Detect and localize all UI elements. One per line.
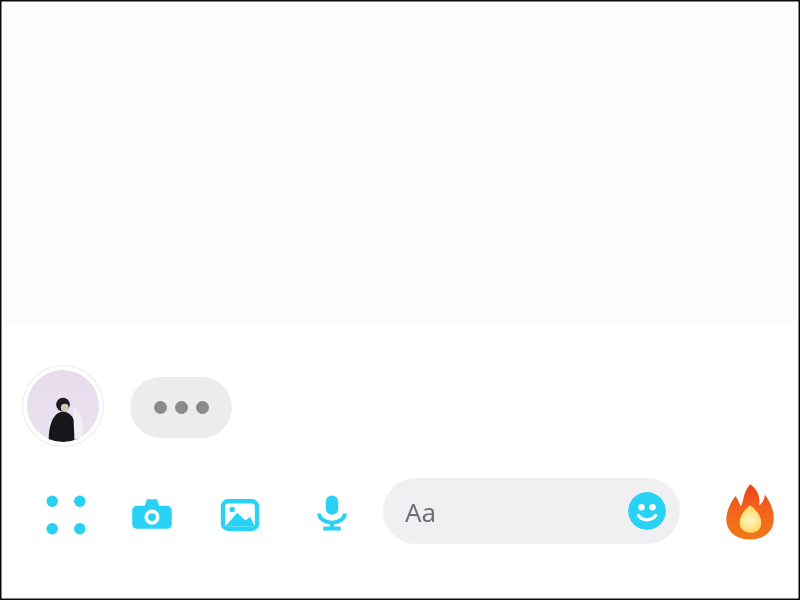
button[interactable]: Typing indicator bbox=[130, 377, 232, 438]
button[interactable]: Camera bbox=[126, 489, 178, 541]
button[interactable]: Contact avatar bbox=[22, 365, 104, 447]
button[interactable]: Emoji bbox=[628, 492, 666, 530]
button[interactable]: Open apps bbox=[40, 489, 92, 541]
staticText: Aa bbox=[405, 494, 437, 529]
button[interactable]: Aa bbox=[383, 478, 680, 544]
button[interactable]: Voice message bbox=[306, 486, 358, 538]
button[interactable]: Gallery bbox=[214, 489, 266, 541]
button[interactable]: Send flame bbox=[714, 475, 786, 547]
